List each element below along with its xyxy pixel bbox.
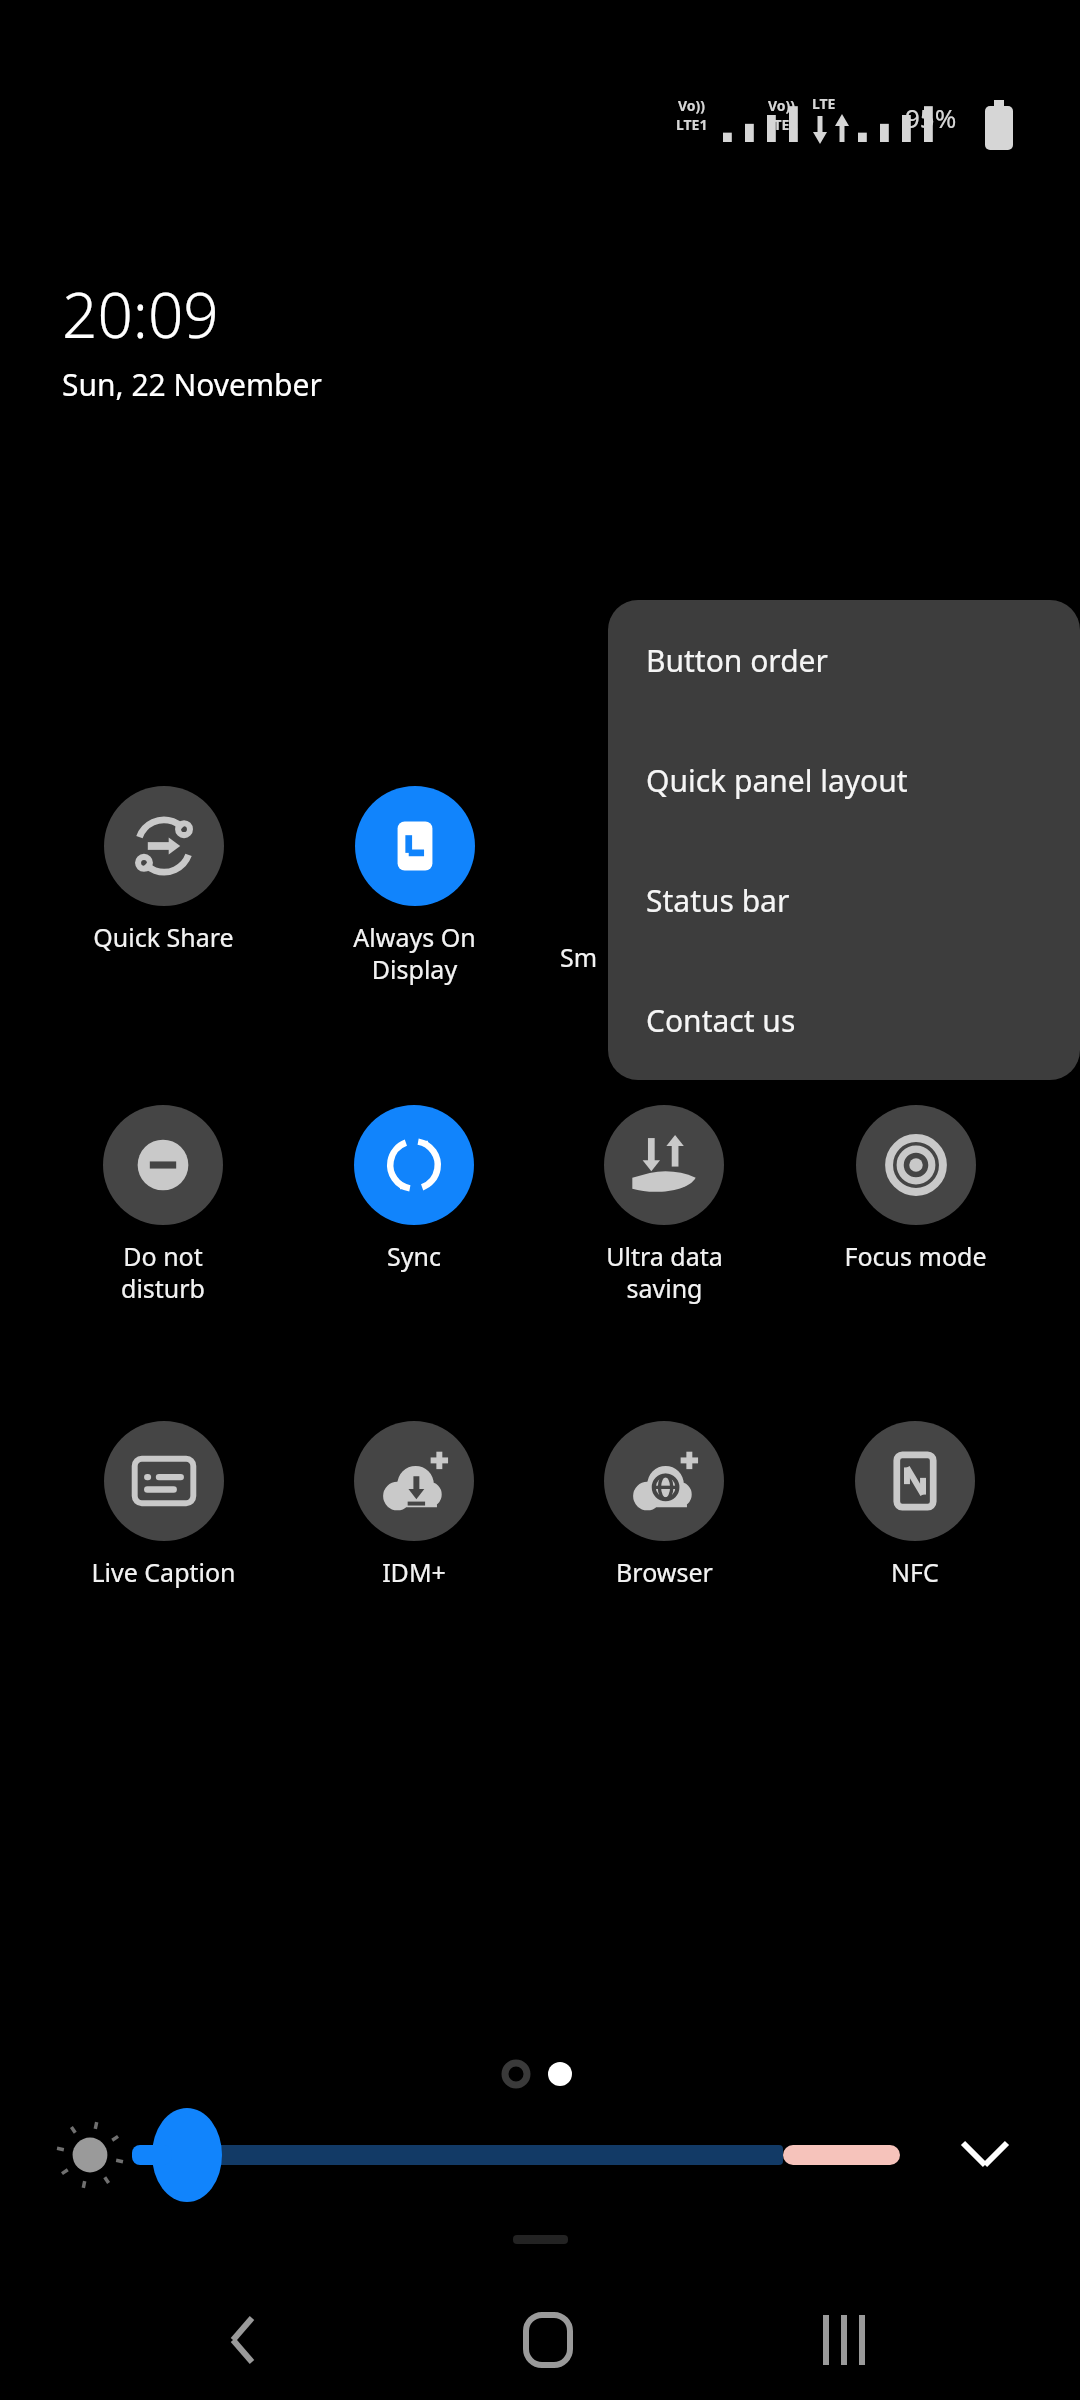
staticText: LTE bbox=[812, 94, 836, 113]
button[interactable]: Focus mode bbox=[797, 1105, 1033, 1273]
staticText: Sm bbox=[560, 940, 598, 974]
button[interactable]: Ultra data saving bbox=[546, 1105, 782, 1305]
staticText: 95% bbox=[905, 100, 957, 135]
staticText: Status bar bbox=[646, 880, 790, 921]
staticText: Contact us bbox=[646, 1000, 796, 1041]
staticText: 20:09 bbox=[62, 272, 219, 356]
staticText: Quick Share bbox=[93, 920, 234, 954]
button[interactable]: Quick Share bbox=[45, 786, 281, 954]
staticText: Focus mode bbox=[844, 1239, 987, 1273]
button[interactable]: Brightness slider bbox=[130, 2110, 920, 2200]
button[interactable]: Live Caption bbox=[45, 1421, 281, 1589]
staticText: Browser bbox=[616, 1555, 713, 1589]
button[interactable]: Back bbox=[180, 2290, 300, 2390]
staticText: Do not disturb bbox=[121, 1239, 205, 1305]
button[interactable]: Sm bbox=[560, 940, 608, 974]
button[interactable]: Do not disturb bbox=[45, 1105, 281, 1305]
staticText: Ultra data saving bbox=[606, 1239, 723, 1305]
staticText: Sun, 22 November bbox=[62, 364, 322, 405]
button[interactable]: Sync bbox=[296, 1105, 532, 1273]
staticText: Live Caption bbox=[91, 1555, 236, 1589]
button[interactable]: IDM+ bbox=[296, 1421, 532, 1589]
staticText: LTE1 bbox=[676, 115, 708, 134]
staticText: Vo)) bbox=[678, 96, 706, 115]
staticText: Vo)) bbox=[768, 96, 796, 115]
staticText: IDM+ bbox=[382, 1555, 446, 1589]
staticText: Always On Display bbox=[353, 920, 476, 986]
button[interactable]: Button order bbox=[608, 600, 1080, 720]
staticText: Quick panel layout bbox=[646, 760, 908, 801]
button[interactable]: Status bar bbox=[608, 840, 1080, 960]
staticText: LTE2 bbox=[766, 115, 798, 134]
staticText: Sync bbox=[387, 1239, 441, 1273]
button[interactable]: Always On Display bbox=[296, 786, 532, 986]
button[interactable]: NFC bbox=[797, 1421, 1033, 1589]
button[interactable]: Contact us bbox=[608, 960, 1080, 1080]
button[interactable]: Quick panel layout bbox=[608, 720, 1080, 840]
button[interactable]: Recent apps bbox=[790, 2290, 910, 2390]
button[interactable]: Browser bbox=[546, 1421, 782, 1589]
staticText: Button order bbox=[646, 640, 828, 681]
button[interactable]: Expand brightness settings bbox=[940, 2110, 1040, 2200]
staticText: NFC bbox=[891, 1555, 939, 1589]
button[interactable]: Home bbox=[488, 2290, 608, 2390]
